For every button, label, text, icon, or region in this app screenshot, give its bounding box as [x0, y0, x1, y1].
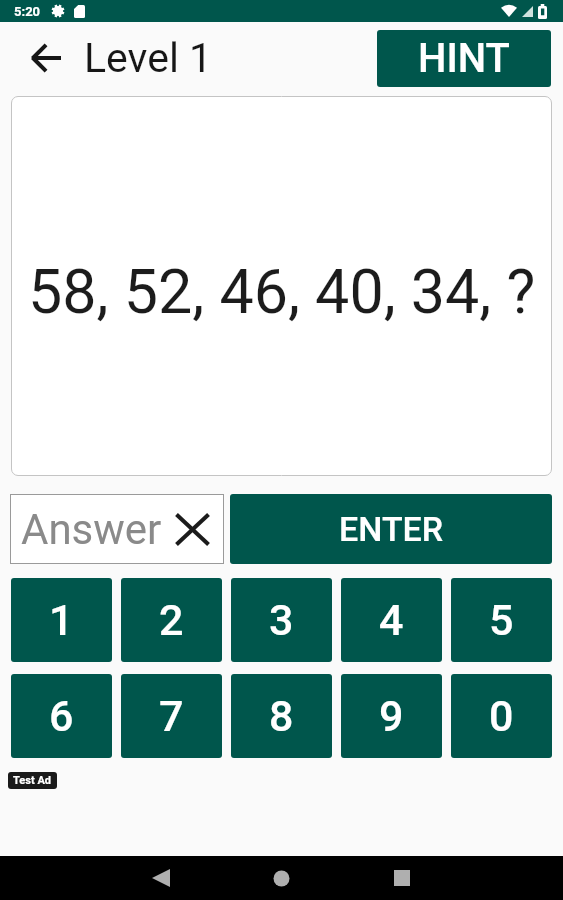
button[interactable]: Answer — [10, 494, 224, 564]
button[interactable]: 1 — [11, 578, 112, 662]
button[interactable]: HINT — [377, 30, 551, 87]
staticText: 6 — [49, 691, 74, 741]
button[interactable] — [152, 869, 170, 887]
staticText: 2 — [159, 595, 184, 645]
button[interactable]: 7 — [121, 674, 222, 758]
staticText: Answer — [21, 505, 162, 554]
button[interactable]: ENTER — [230, 494, 552, 564]
staticText: 9 — [379, 691, 404, 741]
staticText: 1 — [49, 595, 74, 645]
button[interactable] — [175, 512, 210, 547]
staticText: 0 — [489, 691, 514, 741]
button[interactable]: 9 — [341, 674, 442, 758]
staticText: 4 — [379, 595, 404, 645]
staticText: 3 — [269, 595, 294, 645]
staticText: 7 — [159, 691, 184, 741]
staticText: 8 — [269, 691, 294, 741]
button[interactable]: 0 — [451, 674, 552, 758]
staticText: 5 — [489, 595, 514, 645]
button[interactable]: 5 — [451, 578, 552, 662]
button[interactable]: 4 — [341, 578, 442, 662]
button[interactable]: 6 — [11, 674, 112, 758]
button[interactable] — [273, 870, 290, 887]
button[interactable]: 8 — [231, 674, 332, 758]
staticText: 5:20 — [14, 4, 41, 19]
staticText: HINT — [418, 35, 510, 82]
staticText: ENTER — [339, 509, 444, 549]
button[interactable]: 3 — [231, 578, 332, 662]
button[interactable] — [31, 43, 63, 73]
staticText: 58, 52, 46, 40, 34, ? — [28, 256, 536, 327]
staticText: Level 1 — [84, 34, 213, 82]
staticText: Test Ad — [13, 774, 52, 787]
button[interactable]: 2 — [121, 578, 222, 662]
